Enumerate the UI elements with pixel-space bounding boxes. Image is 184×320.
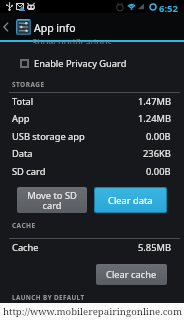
staticText: LAUNCH BY DEFAULT [12, 293, 85, 302]
staticText: Show notifications [32, 36, 112, 44]
staticText: Move to SD card [27, 189, 77, 212]
button[interactable]: USB storage app [0, 128, 184, 145]
staticText: Enable Privacy Guard [34, 57, 127, 70]
button[interactable]: SD card [0, 163, 184, 180]
staticText: App [12, 112, 30, 125]
button[interactable]: Show notifications [0, 42, 184, 50]
staticText: SD card [12, 165, 46, 178]
button[interactable]: Data [0, 145, 184, 162]
button[interactable]: Clear cache [96, 264, 167, 285]
staticText: 0.00B [146, 165, 171, 178]
staticText: USB storage app [12, 130, 85, 143]
staticText: http://www.mobilerepairingonline.com [3, 305, 182, 318]
staticText: Total [12, 95, 34, 108]
staticText: 5.85MB [138, 241, 171, 254]
button[interactable]: Cache [0, 239, 184, 256]
staticText: 0.00B [146, 130, 171, 143]
staticText: 1.47MB [138, 95, 171, 108]
button[interactable]: Enable Privacy Guard [0, 52, 184, 74]
button[interactable]: Total [0, 93, 184, 110]
staticText: CACHE [12, 221, 36, 230]
staticText: 1.24MB [138, 112, 171, 125]
staticText: Cache [12, 241, 39, 254]
button[interactable]: Navigate up [0, 13, 184, 40]
staticText: STORAGE [12, 80, 45, 89]
button[interactable]: Clear data [95, 188, 166, 212]
staticText: 6:52 [159, 2, 178, 15]
staticText: 236KB [143, 147, 171, 160]
staticText: Clear data [108, 194, 153, 207]
button[interactable]: Move to SD card [17, 187, 87, 213]
staticText: Data [12, 147, 33, 160]
staticText: App info [34, 21, 76, 35]
staticText: Clear cache [106, 268, 157, 281]
button[interactable]: App [0, 110, 184, 127]
